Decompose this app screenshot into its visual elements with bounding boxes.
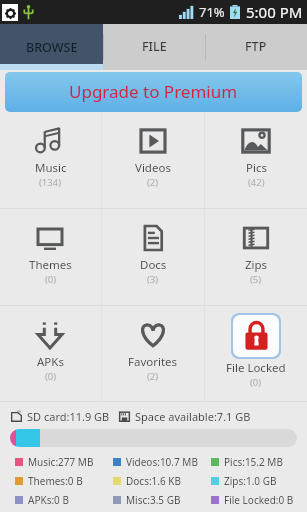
staticText: (134) <box>39 176 62 189</box>
staticText: APKs <box>37 354 64 370</box>
staticText: (2) <box>147 176 159 189</box>
button[interactable]: Videos <box>102 112 204 208</box>
staticText: Videos <box>135 160 171 176</box>
button[interactable]: BROWSE <box>0 24 103 70</box>
staticText: Favorites <box>128 354 178 370</box>
staticText: SD card:11.9 GB <box>27 409 110 424</box>
staticText: Docs:1.6 KB <box>126 474 182 488</box>
staticText: Themes:0 B <box>28 474 83 488</box>
button[interactable]: FTP <box>205 24 307 70</box>
staticText: APKs:0 B <box>28 493 69 507</box>
button[interactable]: Upgrade to Premium <box>5 72 302 112</box>
staticText: (0) <box>45 370 57 383</box>
staticText: (0) <box>250 376 262 389</box>
staticText: Zips <box>245 257 268 273</box>
button[interactable]: Docs <box>102 209 204 305</box>
button[interactable]: Favorites <box>102 306 204 401</box>
staticText: FILE <box>142 38 167 55</box>
button[interactable]: Themes <box>0 209 101 305</box>
staticText: Misc:3.5 GB <box>126 493 181 507</box>
staticText: Space available:7.1 GB <box>135 409 251 424</box>
staticText: File Locked:0 B <box>224 493 294 507</box>
staticText: Docs <box>140 257 167 273</box>
staticText: (0) <box>45 273 57 286</box>
staticText: (3) <box>147 273 159 286</box>
button[interactable]: APKs <box>0 306 101 401</box>
button[interactable]: FILE <box>103 24 205 70</box>
staticText: File Locked <box>226 360 286 376</box>
staticText: (5) <box>250 273 262 286</box>
staticText: 71% <box>199 3 225 21</box>
staticText: Videos:10.7 MB <box>126 455 198 469</box>
staticText: (2) <box>147 370 159 383</box>
staticText: Pics:15.2 MB <box>224 455 283 469</box>
button[interactable]: Pics <box>205 112 307 208</box>
staticText: 5:00 PM <box>246 2 303 22</box>
staticText: (42) <box>248 176 265 189</box>
staticText: Music <box>35 160 67 176</box>
staticText: BROWSE <box>26 39 78 56</box>
button[interactable]: File Locked <box>205 306 307 401</box>
staticText: FTP <box>245 38 267 55</box>
staticText: Zips:1.0 GB <box>224 474 277 488</box>
staticText: Music:277 MB <box>28 455 94 469</box>
button[interactable]: Zips <box>205 209 307 305</box>
button[interactable]: Music <box>0 112 101 208</box>
staticText: Pics <box>246 160 267 176</box>
staticText: Themes <box>29 257 72 273</box>
staticText: Upgrade to Premium <box>69 80 238 103</box>
